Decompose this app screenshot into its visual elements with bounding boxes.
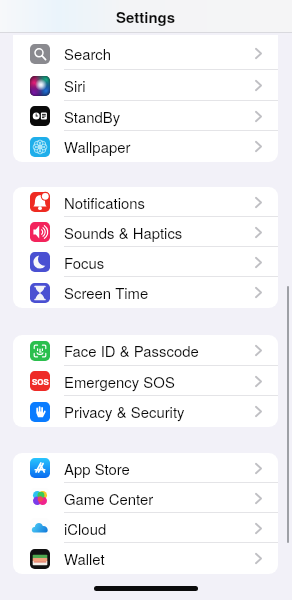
staticText: Screen Time [64, 282, 149, 303]
button[interactable]: Wallet [13, 543, 278, 574]
staticText: Emergency SOS [64, 371, 175, 392]
staticText: Game Center [64, 488, 154, 509]
button[interactable]: iCloud [13, 513, 278, 543]
staticText: Wallpaper [64, 136, 131, 157]
button[interactable]: Wallpaper [13, 131, 278, 162]
button[interactable]: Game Center [13, 483, 278, 513]
button[interactable]: Siri [13, 70, 278, 101]
button[interactable]: Sounds & Haptics [13, 217, 278, 247]
staticText: iCloud [64, 518, 107, 539]
staticText: Search [64, 43, 112, 64]
button[interactable]: Face ID & Passcode [13, 335, 278, 366]
button[interactable]: StandBy [13, 101, 278, 131]
staticText: Siri [64, 75, 86, 96]
staticText: Sounds & Haptics [64, 222, 183, 243]
staticText: SOS [32, 376, 49, 387]
staticText: Face ID & Passcode [64, 340, 199, 361]
button[interactable]: Focus [13, 247, 278, 277]
button[interactable]: Screen Time [13, 277, 278, 308]
button[interactable]: Search [13, 35, 278, 70]
staticText: App Store [64, 458, 130, 479]
button[interactable]: Notifications [13, 187, 278, 217]
button[interactable]: App Store [13, 453, 278, 483]
staticText: Notifications [64, 192, 145, 213]
staticText: Privacy & Security [64, 401, 185, 422]
staticText: Wallet [64, 548, 105, 569]
staticText: Settings [116, 6, 176, 27]
staticText: StandBy [64, 106, 121, 127]
button[interactable]: Privacy & Security [13, 396, 278, 427]
button[interactable]: SOS [13, 366, 278, 396]
staticText: Focus [64, 252, 105, 273]
